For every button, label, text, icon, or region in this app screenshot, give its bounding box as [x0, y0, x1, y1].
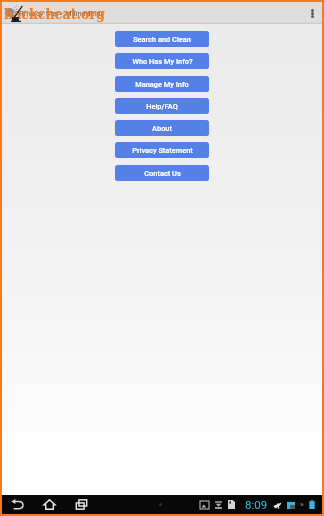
button[interactable]: Contact Us [115, 165, 209, 181]
staticText: Privacy Statement [132, 146, 193, 155]
staticText: hackcheat.org [4, 6, 105, 22]
button[interactable]: Manage My Info [115, 76, 209, 92]
staticText: Who Has My Info? [132, 57, 193, 66]
button[interactable]: Search and Clean [115, 31, 209, 47]
staticText: About [152, 124, 172, 133]
button[interactable]: Help/FAQ [115, 98, 209, 114]
button[interactable]: Home [38, 495, 61, 514]
button[interactable]: Who Has My Info? [115, 53, 209, 69]
button[interactable]: Recents [70, 495, 93, 514]
button[interactable]: More options [302, 2, 322, 24]
staticText: » [300, 500, 304, 509]
staticText: Contact Us [144, 169, 181, 178]
button[interactable]: Back [6, 495, 29, 514]
button[interactable]: About [115, 120, 209, 136]
staticText: Search and Clean [133, 35, 191, 44]
staticText: Help/FAQ [146, 102, 178, 111]
staticText: Privacy Star - Main Menu [19, 9, 103, 18]
staticText: 8:09 [245, 498, 268, 511]
button[interactable]: Privacy Statement [115, 142, 209, 158]
staticText: Manage My Info [135, 80, 189, 89]
